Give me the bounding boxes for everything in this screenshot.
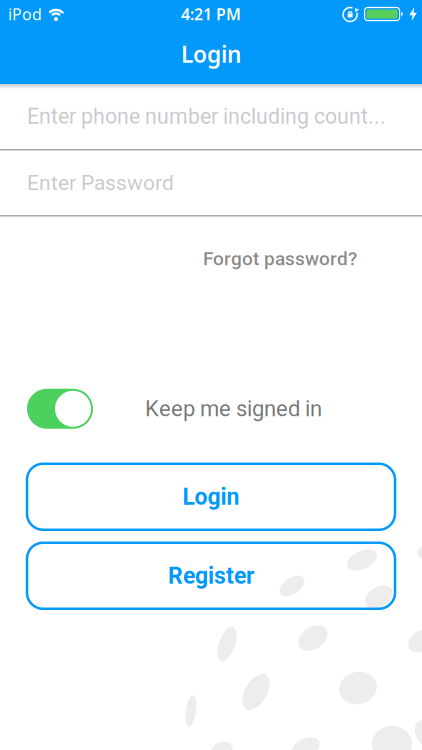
staticText: Login: [182, 483, 239, 510]
staticText: Keep me signed in: [145, 396, 322, 422]
button[interactable]: Forgot password?: [203, 247, 357, 270]
button[interactable]: Enter phone number including count...: [0, 84, 422, 149]
staticText: Forgot password?: [203, 247, 357, 270]
staticText: Register: [168, 562, 254, 589]
button[interactable]: Register: [27, 543, 395, 609]
button[interactable]: Keep me signed in: [27, 389, 93, 429]
staticText: Enter Password: [27, 170, 174, 195]
staticText: iPod: [8, 3, 42, 25]
button[interactable]: Enter Password: [0, 150, 422, 215]
staticText: Login: [181, 39, 241, 69]
staticText: 4:21 PM: [181, 3, 241, 25]
button[interactable]: Login: [27, 464, 395, 530]
staticText: Enter phone number including count...: [27, 104, 386, 129]
